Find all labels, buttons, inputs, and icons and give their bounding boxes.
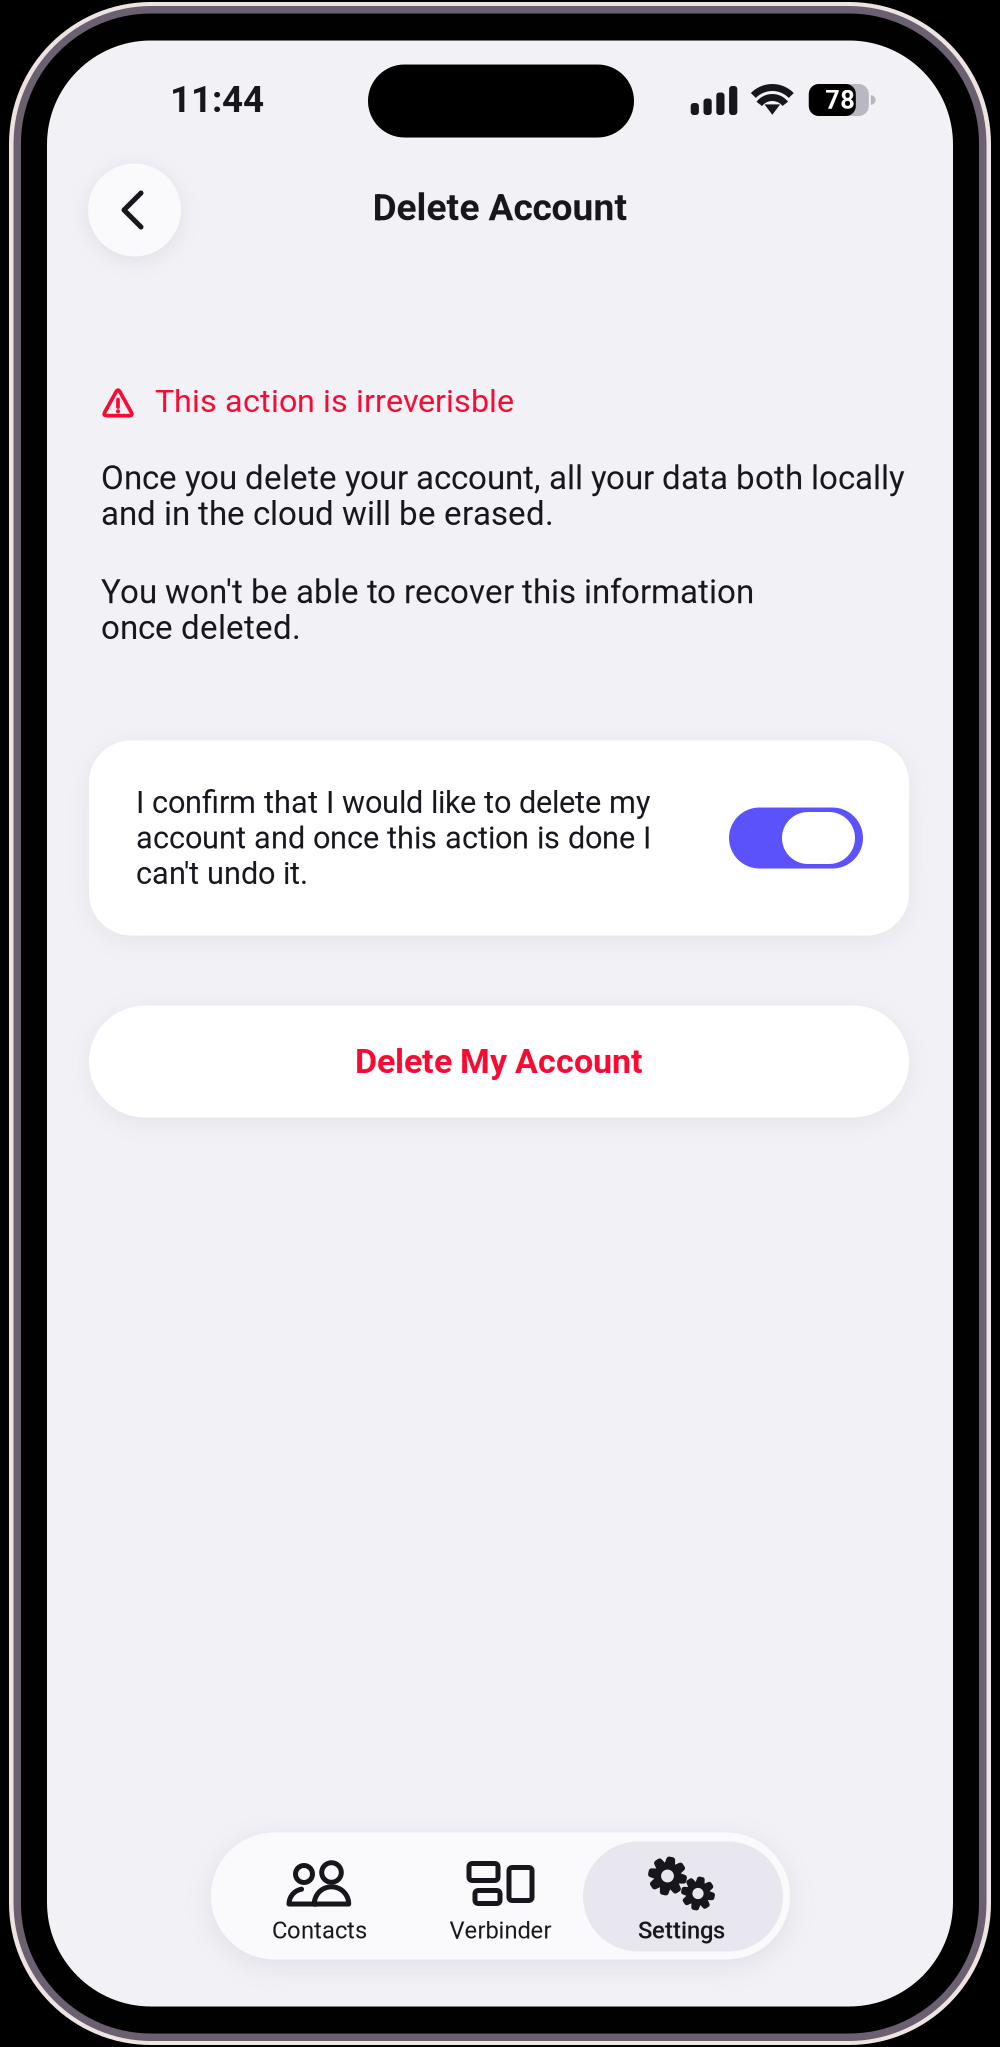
staticText: You won't be able to recover this inform… [101,572,754,647]
staticText: Delete Account [372,186,627,229]
staticText: Once you delete your account, all your d… [101,458,905,533]
button[interactable]: Settings [591,1832,772,1959]
staticText: 78 [825,85,855,115]
button[interactable]: Verbinder [410,1832,591,1959]
staticText: I confirm that I would like to delete my… [136,785,651,891]
button[interactable]: I confirm that I would like to delete my… [89,740,909,935]
staticText: 11:44 [170,78,264,121]
staticText: Verbinder [449,1916,551,1944]
button[interactable]: Back [88,163,181,256]
staticText: Delete My Account [355,1042,643,1081]
staticText: Contacts [272,1916,367,1944]
staticText: This action is irreverisble [155,382,514,420]
button[interactable]: Contacts [229,1832,410,1959]
button[interactable]: Delete My Account [89,1005,909,1117]
staticText: Settings [638,1916,725,1944]
